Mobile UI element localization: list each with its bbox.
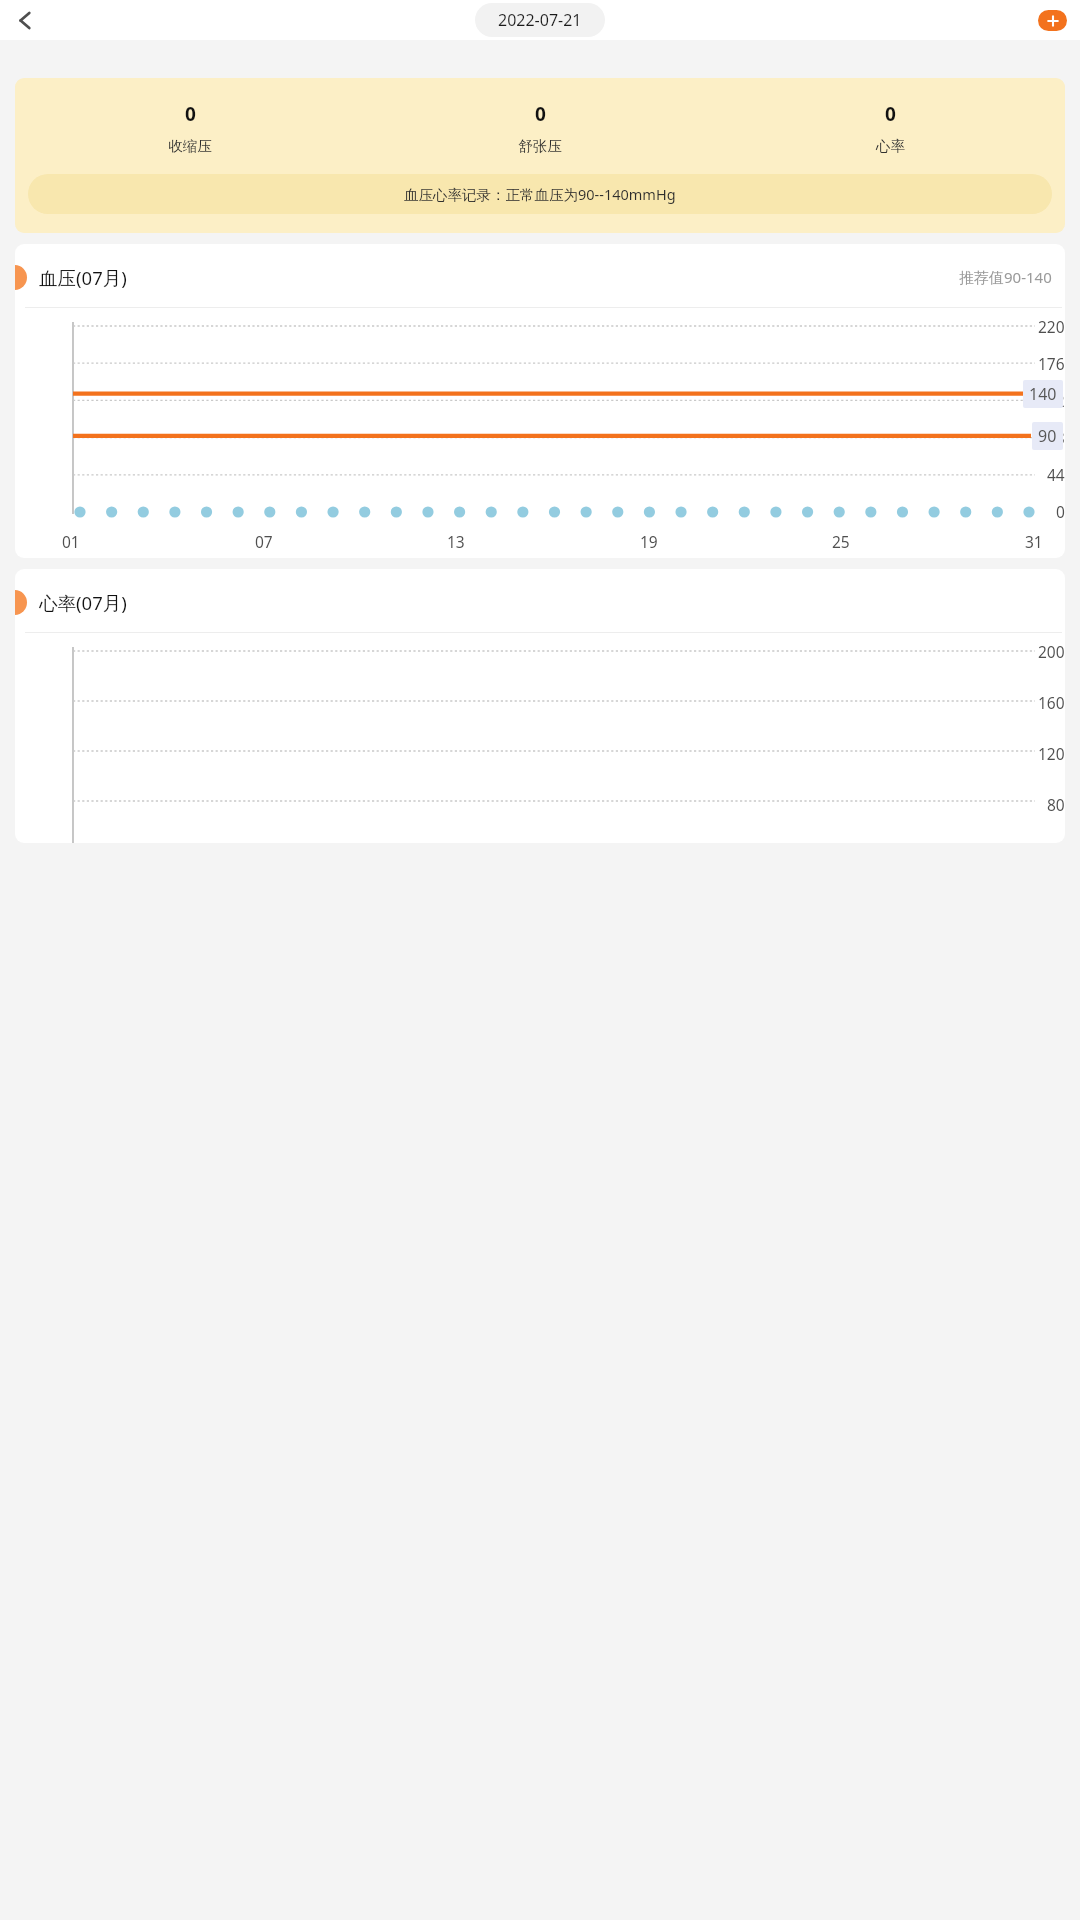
staticText: 140: [1029, 383, 1057, 405]
staticText: 25: [832, 531, 850, 552]
staticText: 88: [1047, 427, 1065, 448]
staticText: 血压(07月): [39, 265, 127, 290]
staticText: 2022-07-21: [498, 9, 582, 31]
staticText: 0: [1056, 501, 1065, 522]
staticText: 120: [1038, 743, 1065, 764]
staticText: 176: [1038, 353, 1065, 374]
button[interactable]: 0: [15, 78, 1065, 233]
staticText: 44: [1047, 464, 1065, 485]
staticText: 19: [640, 531, 658, 552]
button[interactable]: 心率(07月): [15, 569, 1065, 843]
staticText: 07: [255, 531, 273, 552]
staticText: 血压心率记录：正常血压为90--140mmHg: [404, 184, 676, 204]
staticText: 200: [1038, 641, 1065, 662]
staticText: 0: [885, 101, 896, 127]
staticText: 220: [1038, 316, 1065, 337]
button[interactable]: 血压(07月): [15, 244, 1065, 558]
staticText: 0: [535, 101, 546, 127]
button[interactable]: Back: [7, 2, 43, 38]
staticText: 心率: [876, 137, 905, 155]
staticText: 132: [1038, 390, 1065, 411]
staticText: 推荐值90-140: [959, 267, 1052, 287]
staticText: 13: [447, 531, 465, 552]
staticText: 90: [1038, 425, 1057, 447]
staticText: 80: [1047, 794, 1065, 815]
button[interactable]: 2022-07-21: [475, 3, 605, 37]
button[interactable]: Add record: [1038, 10, 1067, 31]
staticText: 0: [185, 101, 196, 127]
staticText: 31: [1025, 531, 1043, 552]
staticText: 心率(07月): [39, 590, 127, 615]
staticText: 01: [62, 531, 80, 552]
staticText: 收缩压: [168, 137, 212, 155]
staticText: 舒张压: [518, 137, 562, 155]
staticText: 160: [1038, 692, 1065, 713]
